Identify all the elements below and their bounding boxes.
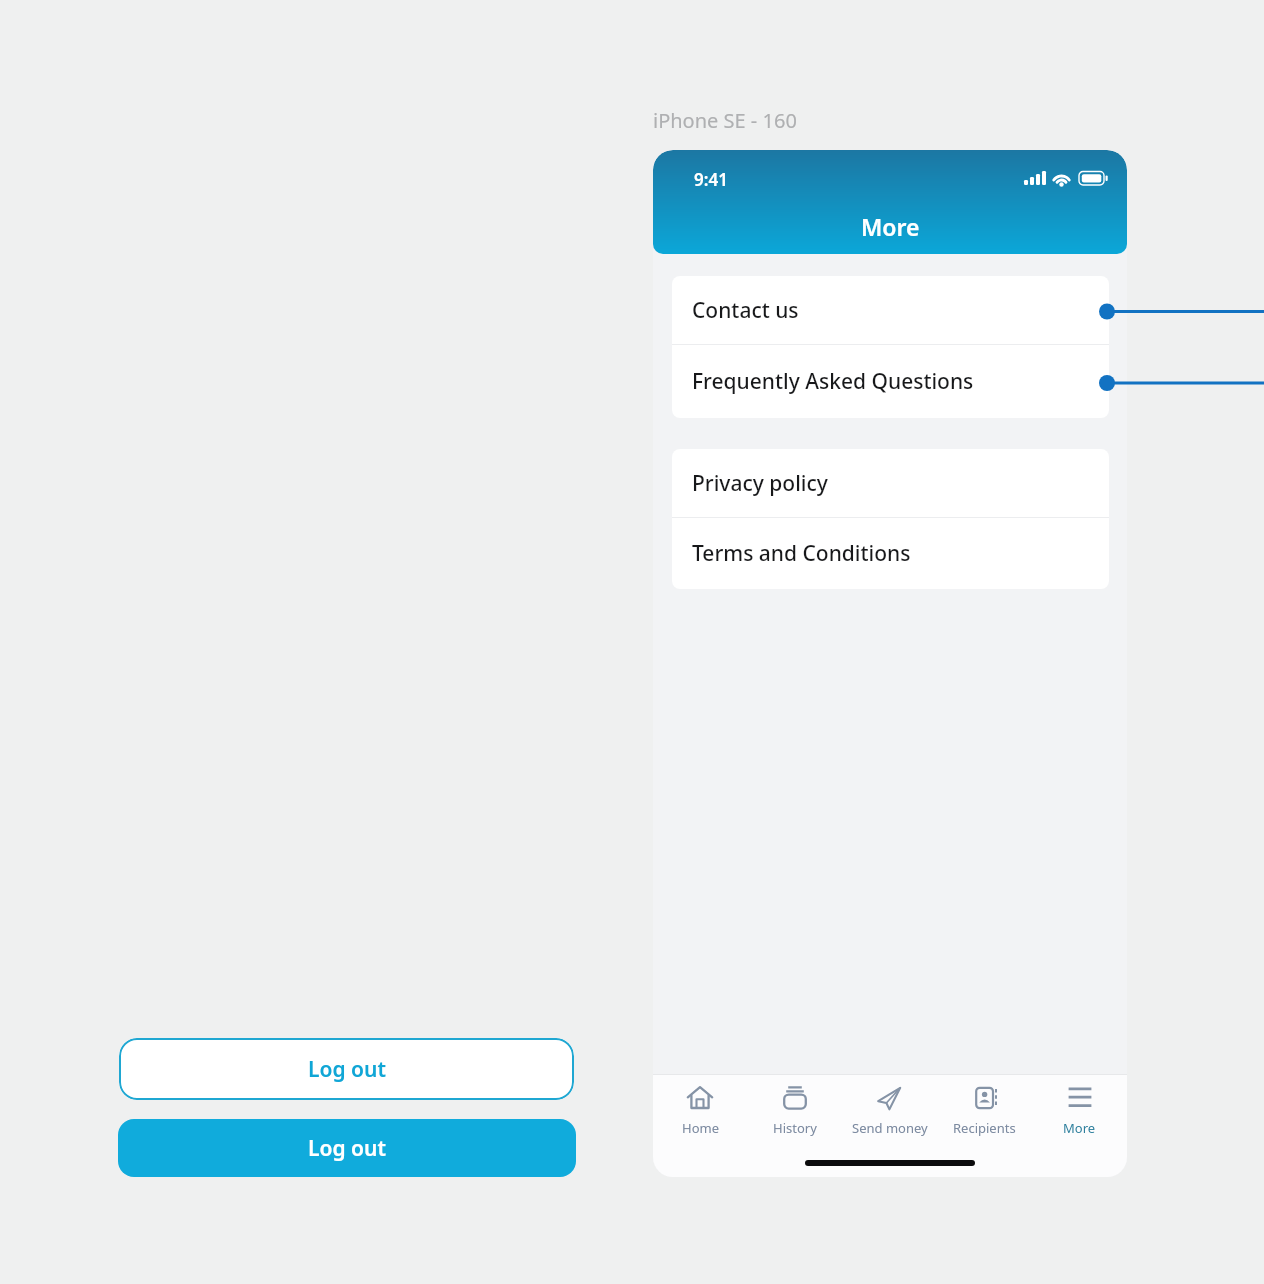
staticText: Log out [308, 1134, 386, 1163]
staticText: More [861, 211, 920, 242]
staticText: Recipients [953, 1119, 1016, 1137]
staticText: Privacy policy [692, 469, 828, 498]
button[interactable]: Recipients [937, 1086, 1032, 1137]
staticText: History [773, 1119, 817, 1137]
button[interactable]: Contact us [672, 276, 1109, 344]
button[interactable]: Log out [118, 1119, 576, 1177]
button[interactable]: History [747, 1086, 842, 1137]
staticText: iPhone SE - 160 [653, 107, 797, 134]
button[interactable]: Frequently Asked Questions [672, 345, 1109, 418]
staticText: Frequently Asked Questions [692, 367, 974, 396]
staticText: Home [682, 1119, 719, 1137]
button[interactable]: Privacy policy [672, 449, 1109, 517]
button[interactable]: Terms and Conditions [672, 518, 1109, 589]
staticText: Terms and Conditions [692, 539, 911, 568]
staticText: Send money [852, 1119, 928, 1137]
button[interactable]: More [1032, 1086, 1127, 1137]
button[interactable]: Log out [119, 1038, 574, 1100]
staticText: Log out [308, 1055, 386, 1084]
button[interactable]: Send money [842, 1086, 937, 1137]
staticText: 9:41 [694, 168, 728, 191]
button[interactable]: Home [653, 1086, 747, 1137]
staticText: Contact us [692, 296, 799, 325]
staticText: More [1063, 1119, 1096, 1137]
